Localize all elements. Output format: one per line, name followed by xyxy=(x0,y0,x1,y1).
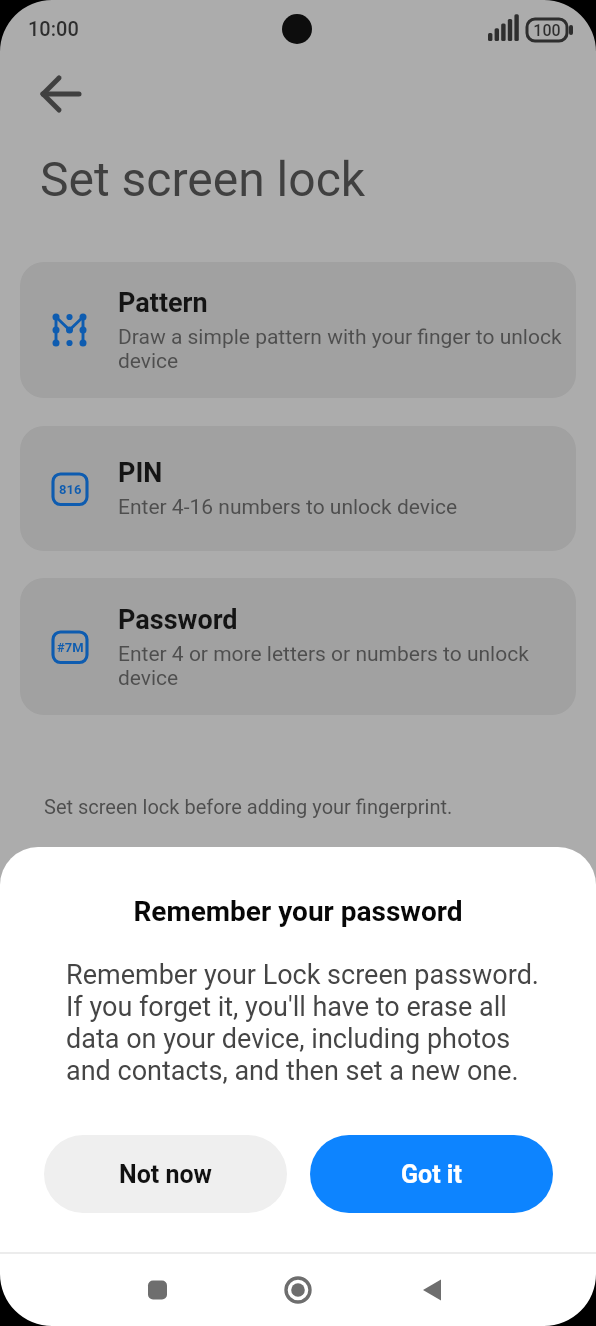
staticText: Pattern xyxy=(118,287,208,319)
staticText: Set screen lock before adding your finge… xyxy=(44,795,453,818)
staticText: Remember your Lock screen password. If y… xyxy=(66,959,539,1087)
staticText: Enter 4 or more letters or numbers to un… xyxy=(118,642,529,690)
staticText: Not now xyxy=(119,1160,212,1189)
staticText: Set screen lock xyxy=(40,151,366,207)
button[interactable]: 816 xyxy=(20,426,576,551)
button[interactable]: #7M xyxy=(20,578,576,715)
button[interactable]: Pattern xyxy=(20,262,576,398)
staticText: Got it xyxy=(401,1160,462,1189)
staticText: 10:00 xyxy=(28,17,79,40)
staticText: Enter 4-16 numbers to unlock device xyxy=(118,495,458,520)
button[interactable]: Not now xyxy=(44,1135,287,1213)
staticText: 100 xyxy=(527,21,567,40)
staticText: Draw a simple pattern with your finger t… xyxy=(118,325,562,373)
staticText: Password xyxy=(118,604,238,636)
staticText: Remember your password xyxy=(0,895,596,928)
button[interactable] xyxy=(33,66,89,122)
button[interactable]: Got it xyxy=(310,1135,553,1213)
staticText: 816 xyxy=(59,482,82,497)
staticText: PIN xyxy=(118,457,163,489)
staticText: #7M xyxy=(57,640,84,655)
